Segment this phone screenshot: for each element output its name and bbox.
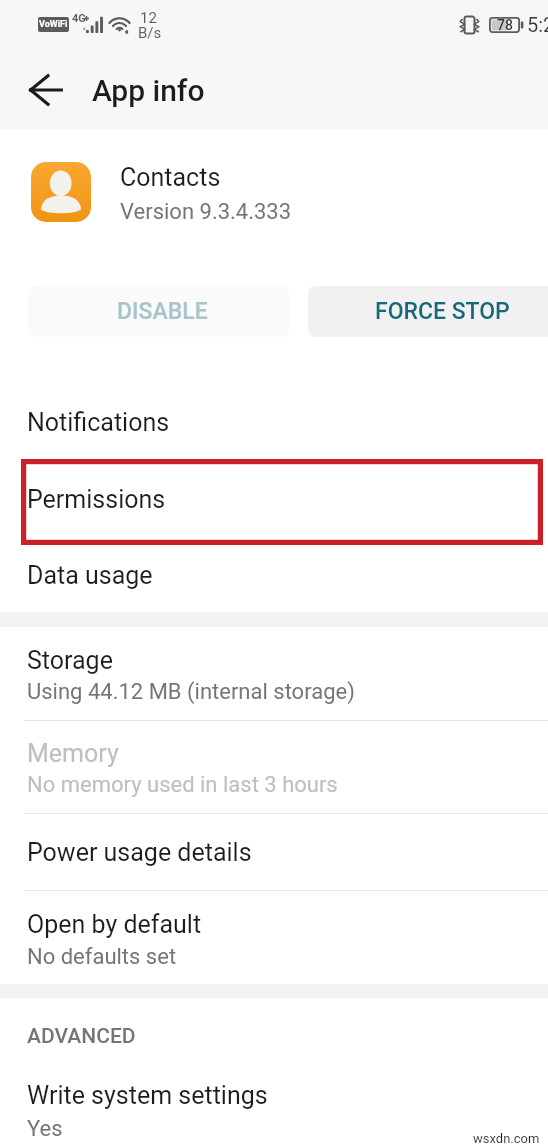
- staticText: Open by default: [27, 910, 202, 939]
- button[interactable]: FORCE STOP: [308, 286, 548, 337]
- staticText: No defaults set: [27, 944, 177, 970]
- staticText: DISABLE: [117, 298, 208, 325]
- staticText: Version 9.3.4.333: [120, 199, 292, 225]
- button[interactable]: Permissions: [0, 461, 548, 537]
- staticText: Write system settings: [27, 1081, 268, 1110]
- button[interactable]: Power usage details: [0, 814, 548, 890]
- staticText: No memory used in last 3 hours: [27, 772, 338, 798]
- staticText: FORCE STOP: [375, 298, 510, 325]
- button[interactable]: Open by default: [0, 892, 548, 985]
- staticText: 12: [140, 9, 157, 27]
- staticText: 4G: [72, 12, 86, 25]
- staticText: 78: [497, 17, 513, 33]
- button[interactable]: Storage: [0, 628, 548, 720]
- staticText: ADVANCED: [27, 1024, 136, 1049]
- staticText: Notifications: [27, 408, 170, 437]
- staticText: Memory: [27, 739, 119, 768]
- staticText: Contacts: [120, 163, 221, 192]
- staticText: Using 44.12 MB (internal storage): [27, 679, 355, 705]
- staticText: Storage: [27, 646, 113, 675]
- button[interactable]: Navigate up: [12, 56, 80, 124]
- button[interactable]: Data usage: [0, 537, 548, 613]
- button[interactable]: Memory: [0, 721, 548, 813]
- staticText: wsxdn.com: [473, 1131, 540, 1146]
- staticText: Yes: [27, 1116, 63, 1142]
- staticText: VoWiFi: [39, 19, 68, 30]
- staticText: 5:24: [527, 13, 548, 36]
- button[interactable]: Write system settings: [0, 1063, 548, 1148]
- staticText: Permissions: [27, 485, 166, 514]
- staticText: Power usage details: [27, 838, 252, 867]
- staticText: B/s: [138, 24, 162, 42]
- button[interactable]: Notifications: [0, 384, 548, 460]
- staticText: App info: [92, 73, 205, 108]
- staticText: Data usage: [27, 561, 153, 590]
- button[interactable]: DISABLE: [28, 286, 289, 337]
